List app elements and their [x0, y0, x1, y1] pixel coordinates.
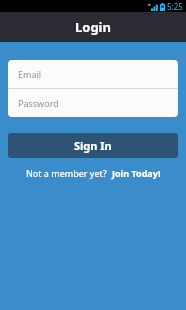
staticText: Password: [18, 97, 59, 109]
button[interactable]: Join Today!: [112, 167, 161, 179]
staticText: Email: [18, 68, 42, 80]
staticText: 5:25: [167, 1, 183, 12]
button[interactable]: Password: [8, 89, 178, 117]
staticText: Sign In: [74, 138, 112, 153]
button[interactable]: Email: [8, 60, 178, 88]
staticText: Login: [75, 18, 111, 36]
staticText: Join Today!: [112, 167, 161, 179]
button[interactable]: Sign In: [8, 133, 178, 158]
staticText: Not a member yet?: [26, 167, 107, 179]
